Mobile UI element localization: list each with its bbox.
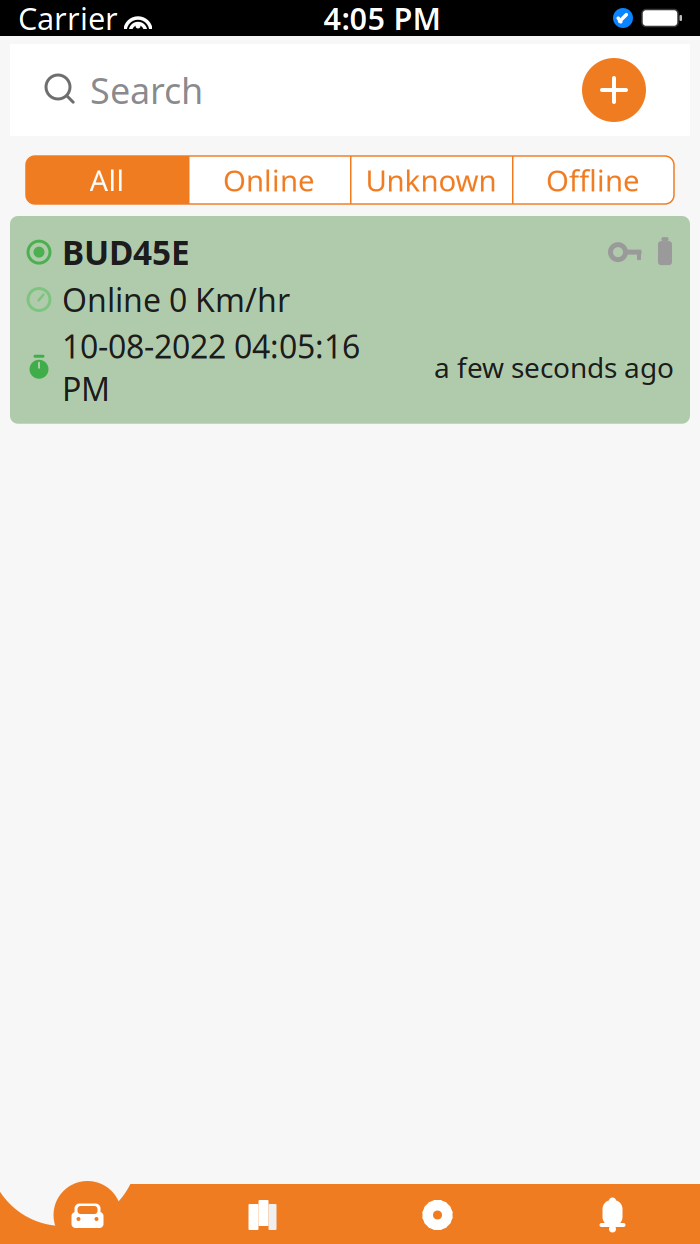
staticText: All	[89, 160, 124, 199]
staticText: Online	[223, 160, 315, 199]
staticText: 10-08-2022 04:05:16 PM	[62, 325, 360, 410]
button[interactable]: Unknown	[350, 156, 512, 204]
button[interactable]: Vehicles	[0, 1176, 175, 1244]
button[interactable]: Online	[188, 156, 350, 204]
button[interactable]: BUD45E	[10, 216, 690, 424]
staticText: Offline	[546, 160, 640, 199]
staticText: BUD45E	[62, 230, 190, 274]
button[interactable]: Notifications	[525, 1176, 700, 1244]
button[interactable]: Search	[90, 44, 330, 136]
staticText: Search	[90, 66, 203, 114]
button[interactable]: Map	[175, 1176, 350, 1244]
button[interactable]: All	[26, 156, 188, 204]
staticText: Online 0 Km/hr	[62, 278, 290, 321]
staticText: Unknown	[365, 160, 496, 199]
button[interactable]: Add vehicle	[582, 58, 646, 122]
staticText: 4:05 PM	[323, 0, 440, 38]
staticText: Carrier	[18, 0, 118, 38]
staticText: a few seconds ago	[434, 349, 674, 386]
button[interactable]: Settings	[350, 1176, 525, 1244]
button[interactable]: Offline	[512, 156, 674, 204]
button[interactable]: Search	[10, 73, 90, 107]
